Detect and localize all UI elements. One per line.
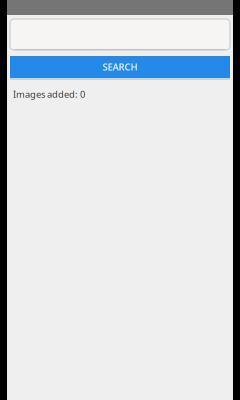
staticText: SEARCH: [102, 61, 137, 73]
staticText: Images added: 0: [13, 88, 85, 100]
button[interactable]: SEARCH: [10, 56, 230, 78]
button[interactable]: Search field: [10, 19, 230, 50]
